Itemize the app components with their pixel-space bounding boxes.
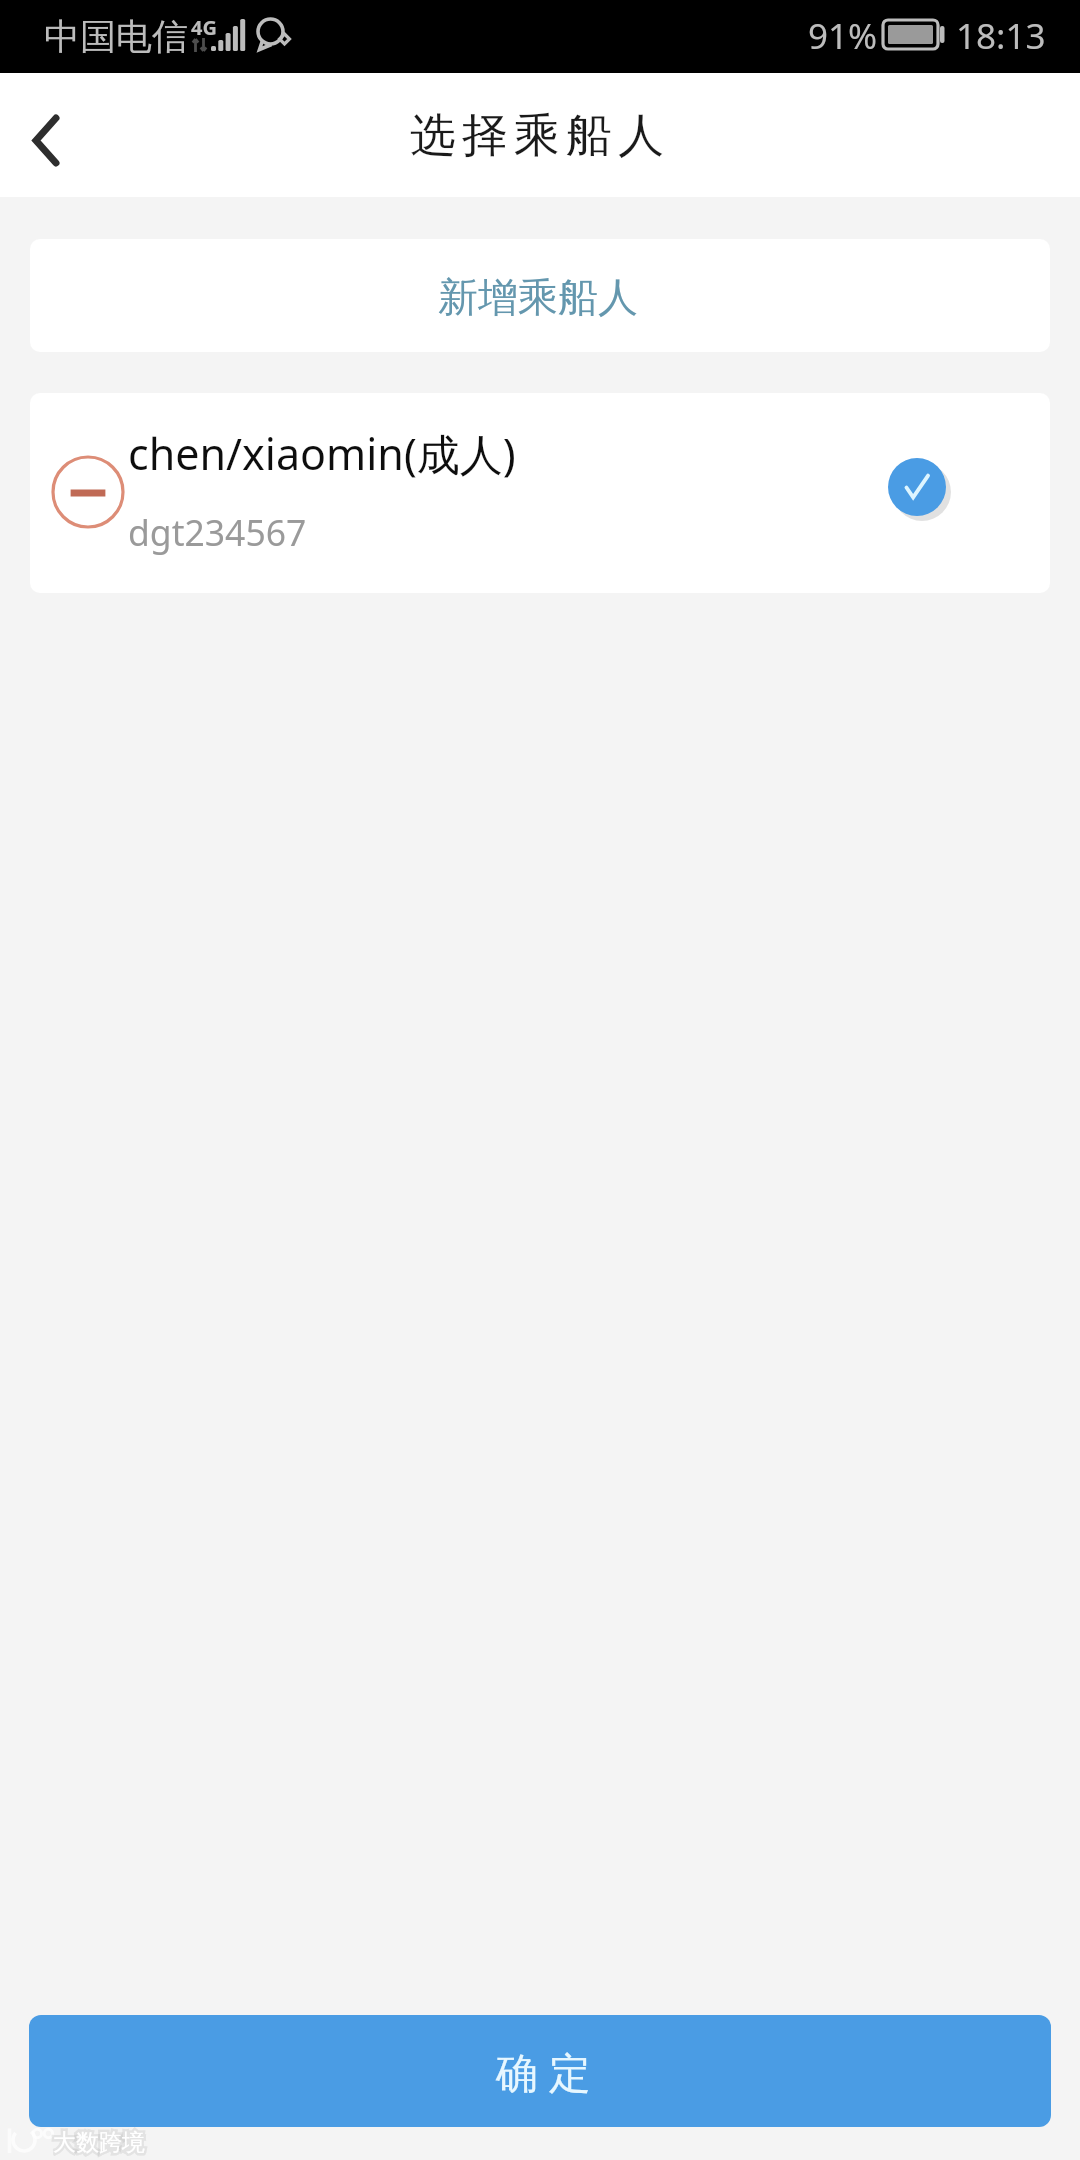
button[interactable]: Remove passenger [43,447,133,537]
button[interactable]: Selected [875,445,959,529]
button[interactable]: Back [0,92,94,188]
staticText: 91% [808,12,878,60]
staticText: dgt234567 [128,508,307,556]
staticText: 大数跨境 [53,2128,145,2157]
staticText: 确 定 [496,2043,591,2100]
staticText: 新增乘船人 [438,272,638,322]
button[interactable]: 确 定 [29,2015,1051,2127]
staticText: 18:13 [956,12,1046,60]
button[interactable]: Remove passenger [30,393,1050,593]
staticText: 中国电信 [44,14,188,59]
staticText: 大数跨境 [53,2128,145,2157]
staticText: 选择乘船人 [410,107,670,165]
button[interactable]: 新增乘船人 [30,239,1050,352]
staticText: 4G [191,14,217,41]
staticText: chen/xiaomin(成人) [128,424,516,483]
